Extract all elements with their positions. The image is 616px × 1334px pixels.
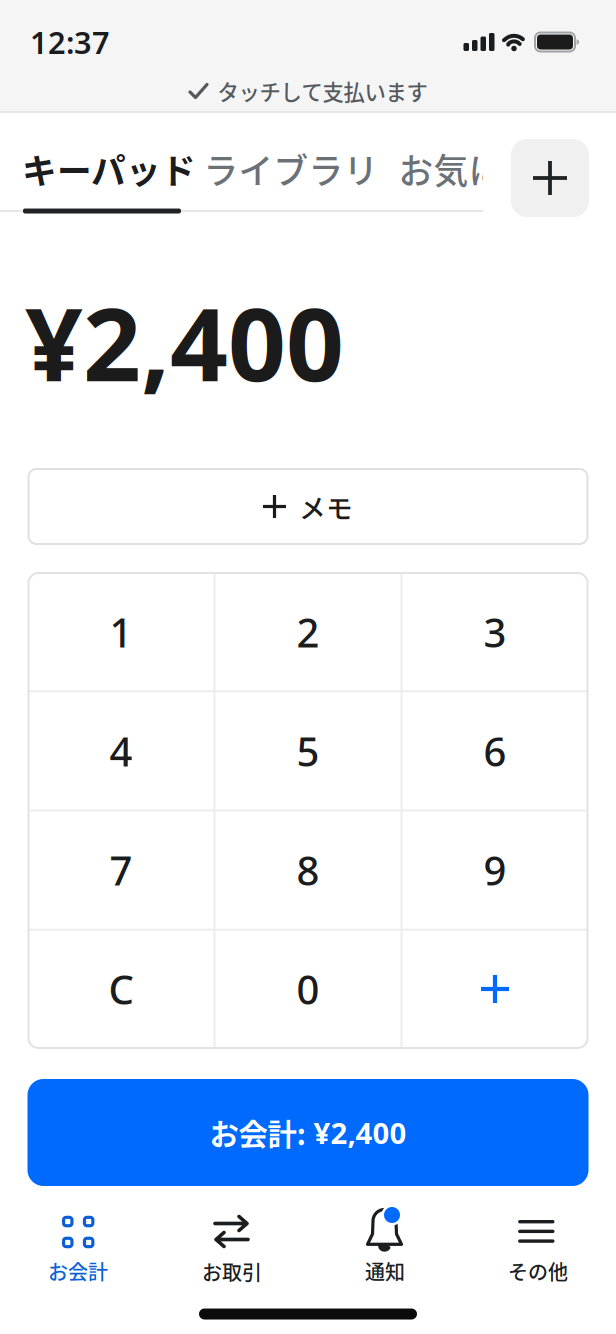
staticText: 12:37 (30, 21, 110, 63)
staticText: C (108, 962, 133, 1016)
staticText: タッチして支払います (217, 76, 427, 106)
button[interactable]: 8 (214, 810, 401, 929)
staticText: 9 (483, 843, 506, 897)
button[interactable]: メモ (27, 468, 588, 545)
staticText: 4 (109, 724, 132, 778)
staticText: キーパッド (22, 144, 196, 194)
button[interactable]: お取引 (171, 1193, 291, 1281)
button[interactable]: 通知 (325, 1193, 445, 1281)
staticText: お会計: (209, 1111, 313, 1154)
staticText: ¥2,400 (313, 1112, 406, 1152)
button[interactable]: 1 (27, 572, 214, 691)
staticText: 1 (109, 605, 132, 659)
staticText: 7 (109, 843, 132, 897)
staticText: ライブラリ (203, 144, 378, 194)
button[interactable]: 7 (27, 810, 214, 929)
staticText: 0 (296, 962, 319, 1016)
button[interactable]: C (27, 929, 214, 1048)
staticText: 8 (296, 843, 319, 897)
staticText: 2 (296, 605, 319, 659)
staticText: 5 (296, 724, 319, 778)
button[interactable]: 9 (401, 810, 588, 929)
button[interactable]: その他 (479, 1193, 599, 1281)
staticText: お気に入り (398, 144, 573, 194)
button[interactable]: 2 (214, 572, 401, 691)
staticText: お取引 (202, 1257, 262, 1286)
button[interactable]: 6 (401, 691, 588, 810)
staticText: 通知 (365, 1256, 405, 1285)
staticText: 6 (483, 724, 506, 778)
button[interactable]: 5 (214, 691, 401, 810)
button[interactable]: お会計: (27, 1079, 588, 1186)
button[interactable]: ライブラリ (203, 144, 378, 194)
staticText: その他 (508, 1256, 568, 1285)
staticText: 3 (483, 605, 506, 659)
button[interactable]: お気に入り (398, 144, 573, 194)
staticText: ¥2,400 (25, 273, 344, 411)
button[interactable]: 4 (27, 691, 214, 810)
button[interactable]: お会計 (17, 1193, 137, 1281)
button[interactable]: 0 (214, 929, 401, 1048)
button[interactable]: キーパッド (22, 144, 196, 194)
button[interactable]: 3 (401, 572, 588, 691)
staticText: お会計 (48, 1256, 108, 1285)
button[interactable]: Add amount (401, 929, 588, 1048)
button[interactable]: Add item (511, 139, 589, 217)
staticText: メモ (299, 487, 353, 526)
